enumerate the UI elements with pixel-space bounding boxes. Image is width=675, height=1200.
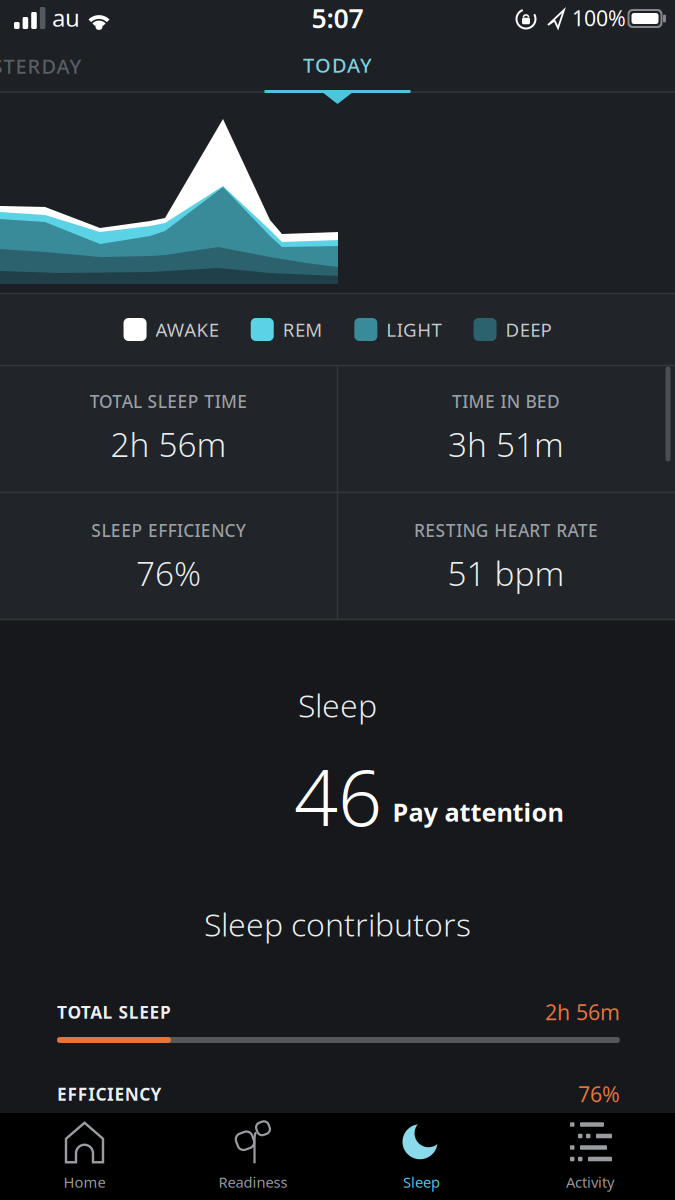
staticText: 46 (294, 745, 382, 847)
staticText: Sleep (403, 1172, 440, 1192)
staticText: 76% (136, 551, 201, 595)
staticText: 2h 56m (110, 422, 226, 466)
staticText: 3h 51m (448, 422, 564, 466)
staticText: 2h 56m (545, 998, 620, 1026)
staticText: TIME IN BED (452, 390, 560, 413)
button[interactable]: Sleep (337, 1116, 505, 1196)
button[interactable]: TODAY (303, 52, 372, 78)
button[interactable]: Activity (506, 1116, 674, 1196)
staticText: EFFICIENCY (57, 1082, 162, 1105)
staticText: DEEP (505, 317, 551, 342)
staticText: Home (63, 1172, 105, 1192)
staticText: TOTAL SLEEP TIME (90, 390, 247, 413)
staticText: 5:07 (311, 0, 363, 36)
staticText: LIGHT (386, 317, 442, 342)
staticText: REM (283, 317, 322, 342)
staticText: Activity (566, 1172, 614, 1192)
staticText: au (52, 2, 80, 33)
staticText: Sleep (298, 684, 377, 726)
staticText: RESTING HEART RATE (414, 519, 598, 542)
staticText: Pay attention (392, 795, 563, 829)
staticText: AWAKE (156, 317, 219, 342)
staticText: TOTAL SLEEP (57, 1000, 171, 1023)
staticText: SLEEP EFFICIENCY (91, 519, 246, 542)
button[interactable]: Readiness (169, 1116, 337, 1196)
button[interactable]: Home (0, 1116, 168, 1196)
button[interactable]: YESTERDAY (0, 53, 81, 79)
staticText: 100% (572, 4, 626, 32)
staticText: Sleep contributors (204, 903, 471, 945)
staticText: YESTERDAY (0, 53, 81, 79)
staticText: 51 bpm (447, 551, 564, 595)
staticText: TODAY (303, 52, 372, 78)
staticText: Readiness (218, 1172, 287, 1192)
staticText: 76% (578, 1080, 620, 1108)
